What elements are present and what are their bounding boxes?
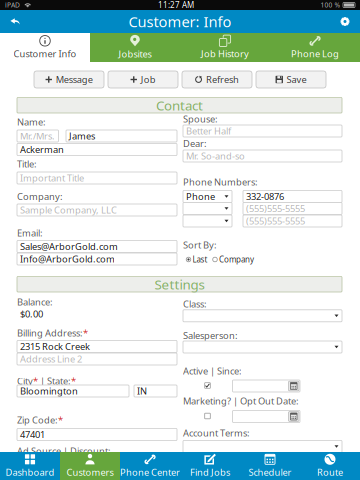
staticText: Address Line 2 [20,353,82,365]
staticText: Salesperson: [183,329,238,342]
staticText: Scheduler [248,466,291,478]
button[interactable]: Job History [180,33,270,62]
button[interactable]: Dashboard [0,452,60,480]
staticText: Job [141,73,156,86]
staticText: 2315 Rock Creek [20,340,90,353]
button[interactable]: Scheduler [240,452,300,480]
button[interactable]: Company [212,255,258,263]
staticText: Info@ArborGold.com [20,253,115,265]
staticText: Job History [201,48,249,60]
button[interactable]: Pick date [288,381,299,391]
button[interactable]: Find Jobs [180,452,240,480]
staticText: 100 % [320,1,340,9]
button[interactable]: Refresh [182,71,252,88]
button[interactable]: Phone Center [120,452,180,480]
staticText: | State: [38,375,71,387]
staticText: Better Half [186,125,231,137]
staticText: Last [193,254,208,265]
staticText: Marketing? | Opt Out Date: [183,395,299,407]
button[interactable]: Unchecked [204,412,211,419]
staticText: Sort By: [183,239,217,251]
button[interactable]: Phone [183,190,232,202]
button[interactable]: Message [34,71,104,88]
button[interactable]: Save [256,71,326,88]
staticText: Zip Code: [17,414,58,426]
staticText: James [69,130,95,142]
staticText: Customer: Info [128,12,231,31]
staticText: Title: [17,158,37,170]
staticText: Find Jobs [190,466,230,478]
button[interactable]: Phone Log [270,33,360,62]
staticText: 11:27 AM [158,0,194,10]
button[interactable] [183,202,232,214]
staticText: * [58,414,63,426]
staticText: * [33,375,38,387]
staticText: Contact [156,96,203,114]
staticText: Phone Center [120,466,180,478]
button[interactable]: Last [186,255,212,263]
staticText: Customer Info [13,48,76,60]
staticText: Bloomington [20,385,78,397]
staticText: IN [137,385,147,397]
staticText: Billing Address: [17,327,83,339]
staticText: Phone Numbers: [183,176,258,188]
staticText: Class: [183,298,207,310]
staticText: Mr./Mrs. [20,130,55,142]
staticText: Spouse: [183,113,218,125]
button[interactable]: Settings [334,10,356,33]
staticText: * [83,327,88,339]
staticText: Ackerman [20,143,64,156]
staticText: Important Title [20,172,84,184]
staticText: Settings [154,275,204,293]
staticText: Sample Company, LLC [20,204,117,216]
button[interactable]: Pick date [288,412,299,421]
staticText: Save [287,73,307,86]
staticText: Message [56,73,93,86]
staticText: Phone [186,190,215,203]
staticText: iPAD [5,1,20,9]
staticText: Jobsites [118,48,151,60]
staticText: Active | Since: [183,365,242,377]
button[interactable]: Job [108,71,178,88]
staticText: Phone Log [291,47,339,60]
staticText: $0.00 [20,308,43,320]
button[interactable] [183,215,232,227]
staticText: Ad Source | Discount: [17,445,111,457]
staticText: 47401 [20,428,45,441]
button[interactable] [183,310,342,322]
button[interactable]: Checked [204,382,211,389]
staticText: Dashboard [5,466,54,478]
staticText: * [71,375,76,387]
button[interactable]: Back [4,10,26,33]
staticText: Company [219,254,254,265]
staticText: Mr. So-and-so [186,150,245,162]
button[interactable]: Route [300,452,360,480]
staticText: Route [317,466,343,478]
staticText: Customers [66,466,113,478]
staticText: Refresh [206,73,239,86]
staticText: (555)555-5555 [246,202,305,215]
staticText: City [17,375,33,387]
staticText: 332-0876 [246,190,284,203]
button[interactable] [183,341,342,353]
staticText: Company: [17,190,63,202]
staticText: Balance: [17,296,53,308]
staticText: Dear: [183,137,207,150]
button[interactable] [183,440,342,452]
button[interactable]: Customer Info [0,33,90,62]
button[interactable]: Customers [60,452,120,480]
staticText: Name: [17,116,46,128]
staticText: Account Terms: [183,427,250,439]
staticText: Sales@ArborGold.com [20,240,118,253]
staticText: (555)555-5555 [246,215,305,227]
button[interactable]: Jobsites [90,33,180,62]
staticText: Email: [17,227,43,239]
